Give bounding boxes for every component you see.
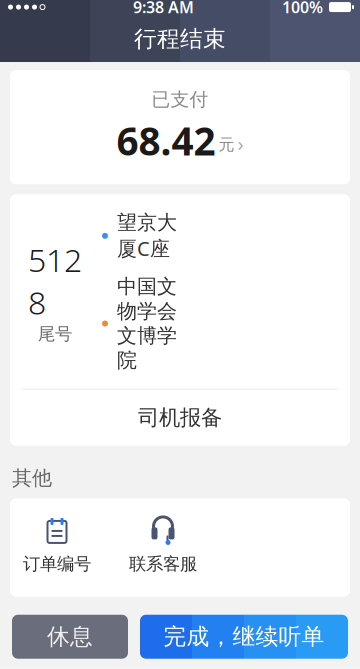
staticText: 68.42 <box>116 115 215 166</box>
button[interactable]: 休息 <box>12 615 128 659</box>
staticText: 行程结束 <box>134 25 226 53</box>
button[interactable]: 司机报备 <box>10 390 350 446</box>
button[interactable]: 订单编号 <box>18 516 96 575</box>
staticText: 订单编号 <box>23 553 91 575</box>
staticText: 尾号 <box>38 323 72 345</box>
staticText: › <box>237 130 243 157</box>
staticText: 中国文物学会文博学院 <box>117 274 177 373</box>
staticText: 完成，继续听单 <box>163 623 324 651</box>
staticText: 已支付 <box>151 88 208 111</box>
button[interactable]: 联系客服 <box>124 516 202 575</box>
staticText: 5128 <box>28 238 82 323</box>
staticText: 9:38 AM <box>133 0 194 18</box>
button[interactable]: 完成，继续听单 <box>140 615 348 659</box>
staticText: 休息 <box>47 623 93 651</box>
staticText: 望京大厦C座 <box>117 210 177 261</box>
staticText: 其他 <box>12 466 52 490</box>
button[interactable]: 已支付 <box>10 70 350 184</box>
staticText: 元 <box>218 135 234 154</box>
staticText: 联系客服 <box>129 553 197 575</box>
staticText: 司机报备 <box>138 405 222 431</box>
staticText: 100% <box>282 0 323 18</box>
